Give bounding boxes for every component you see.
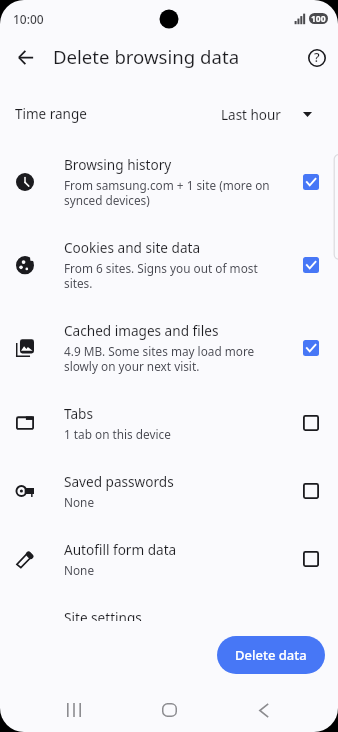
staticText: Cookies and site data — [64, 238, 201, 257]
button[interactable]: Toggle — [299, 547, 322, 571]
button[interactable]: Cached images and files — [0, 306, 338, 389]
staticText: 4.9 MB. Some sites may load more slowly … — [64, 343, 277, 374]
staticText: Delete browsing data — [53, 44, 240, 69]
staticText: 10:00 — [13, 11, 44, 27]
button[interactable]: Autofill form data — [0, 525, 338, 592]
staticText: Cached images and files — [64, 321, 219, 340]
button[interactable]: Toggle — [299, 336, 322, 360]
staticText: 1 tab on this device — [64, 426, 171, 442]
staticText: Site settings — [64, 608, 142, 621]
staticText: Last hour — [221, 106, 281, 124]
button[interactable]: Saved passwords — [0, 456, 338, 525]
button[interactable]: Last hour — [213, 97, 324, 131]
button[interactable]: Cookies and site data — [0, 223, 338, 306]
staticText: From samsung.com + 1 site (more on synce… — [64, 177, 277, 208]
button[interactable]: Browsing history — [0, 140, 338, 223]
staticText: Autofill form data — [64, 540, 177, 559]
button[interactable]: Toggle — [299, 411, 322, 435]
button[interactable]: Toggle — [299, 253, 322, 277]
button[interactable]: Help — [299, 40, 334, 75]
staticText: 100 — [311, 13, 326, 24]
button[interactable]: Tabs — [0, 389, 338, 456]
button[interactable]: Delete data — [217, 636, 325, 674]
button[interactable]: Toggle — [299, 479, 322, 503]
staticText: Tabs — [64, 404, 93, 423]
staticText: ? — [314, 49, 320, 66]
button[interactable]: Back — [242, 696, 286, 724]
staticText: Time range — [15, 105, 87, 123]
button[interactable]: Recent apps — [52, 696, 96, 724]
staticText: From 6 sites. Signs you out of most site… — [64, 260, 277, 291]
staticText: None — [64, 562, 95, 578]
staticText: Delete data — [235, 646, 307, 664]
staticText: Browsing history — [64, 155, 172, 174]
button[interactable]: Home — [147, 696, 191, 724]
button[interactable]: Toggle — [299, 170, 322, 194]
staticText: None — [64, 494, 95, 510]
button[interactable]: Back — [8, 40, 43, 75]
staticText: Saved passwords — [64, 472, 174, 491]
